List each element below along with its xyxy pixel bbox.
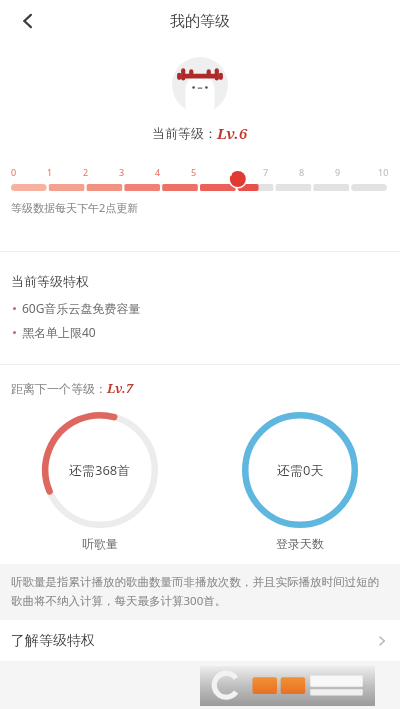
staticText: 听歌量是指累计播放的歌曲数量而非播放次数，并且实际播放时间过短的歌曲将不纳入计算… bbox=[11, 575, 389, 609]
staticText: 登录天数 bbox=[276, 536, 324, 551]
button[interactable]: Back bbox=[8, 1, 48, 41]
staticText: 9 bbox=[335, 166, 341, 178]
staticText: 黑名单上限40 bbox=[22, 324, 96, 340]
staticText: 还需368首 bbox=[69, 461, 131, 479]
staticText: 5 bbox=[191, 166, 197, 178]
staticText: 2 bbox=[83, 166, 89, 178]
staticText: 60G音乐云盘免费容量 bbox=[22, 300, 141, 316]
staticText: 4 bbox=[155, 166, 161, 178]
button[interactable]: 了解等级特权 bbox=[0, 620, 400, 661]
staticText: 10 bbox=[378, 166, 389, 178]
staticText: 等级数据每天下午2点更新 bbox=[11, 200, 139, 215]
staticText: 8 bbox=[299, 166, 305, 178]
staticText: 了解等级特权 bbox=[11, 632, 375, 650]
staticText: 0 bbox=[11, 166, 17, 178]
staticText: 还需0天 bbox=[277, 461, 324, 479]
staticText: Lv.7 bbox=[107, 379, 134, 397]
staticText: 当前等级： bbox=[152, 125, 217, 141]
staticText: 6 bbox=[227, 166, 233, 178]
staticText: 距离下一个等级： bbox=[11, 381, 107, 396]
staticText: 7 bbox=[263, 166, 269, 178]
staticText: 听歌量 bbox=[82, 536, 118, 551]
staticText: Lv.6 bbox=[217, 123, 248, 143]
staticText: 当前等级特权 bbox=[11, 273, 89, 289]
staticText: 3 bbox=[119, 166, 125, 178]
staticText: 我的等级 bbox=[170, 12, 230, 31]
staticText: 1 bbox=[47, 166, 53, 178]
